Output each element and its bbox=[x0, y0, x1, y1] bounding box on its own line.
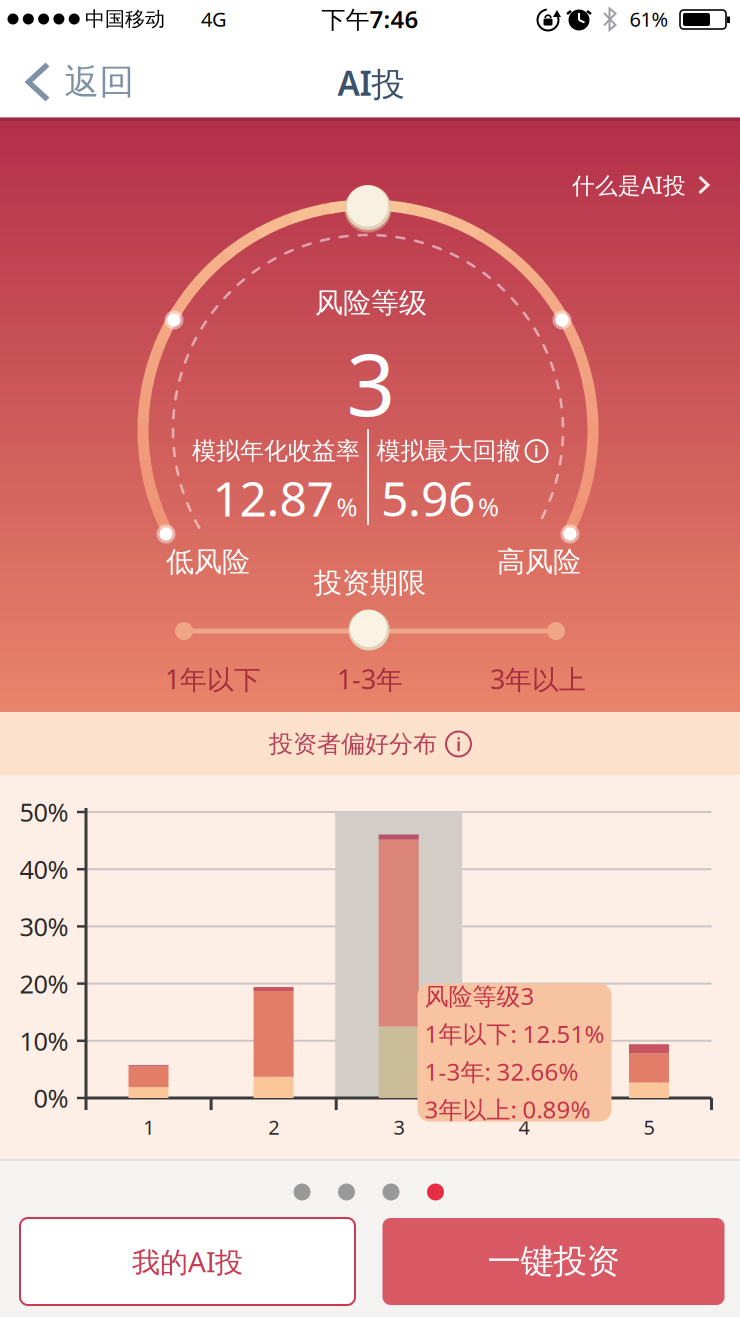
button[interactable]: 第1页 bbox=[293, 1183, 310, 1200]
staticText: 高风险 bbox=[497, 545, 581, 579]
button[interactable]: 我的AI投 bbox=[20, 1218, 355, 1305]
staticText: 什么是AI投 bbox=[572, 170, 686, 200]
staticText: 4G bbox=[201, 6, 227, 32]
staticText: 低风险 bbox=[166, 545, 250, 579]
staticText: 返回 bbox=[64, 61, 134, 103]
staticText: 投资期限 bbox=[314, 566, 426, 600]
staticText: 下午7:46 bbox=[321, 3, 418, 35]
button[interactable]: 什么是AI投 bbox=[572, 170, 710, 200]
staticText: 一键投资 bbox=[487, 1241, 619, 1282]
staticText: 模拟年化收益率 bbox=[192, 436, 360, 466]
staticText: AI投 bbox=[337, 61, 404, 105]
button[interactable]: 第4页 bbox=[427, 1183, 444, 1200]
button[interactable]: 投资者偏好分布信息 bbox=[269, 729, 471, 759]
staticText: 1年以下: 12.51% bbox=[424, 1018, 604, 1049]
staticText: 模拟最大回撤 bbox=[376, 436, 520, 466]
staticText: 1 bbox=[143, 1114, 154, 1140]
staticText: 投资者偏好分布 bbox=[269, 729, 437, 759]
staticText: 3年以上: 0.89% bbox=[424, 1093, 590, 1125]
staticText: 2 bbox=[268, 1114, 279, 1140]
staticText: 中国移动 bbox=[85, 7, 165, 31]
staticText: i bbox=[456, 732, 461, 756]
button[interactable]: 一键投资 bbox=[382, 1218, 724, 1305]
staticText: 5 bbox=[644, 1114, 655, 1140]
staticText: 3年以上 bbox=[490, 661, 586, 697]
staticText: 40% bbox=[19, 852, 68, 886]
button[interactable]: 第2页 bbox=[338, 1183, 355, 1200]
staticText: 10% bbox=[19, 1024, 68, 1058]
staticText: % bbox=[336, 490, 357, 524]
staticText: % bbox=[478, 490, 499, 524]
button[interactable]: 返回 bbox=[10, 51, 150, 113]
staticText: 3 bbox=[393, 1114, 404, 1140]
staticText: 61% bbox=[629, 6, 668, 32]
staticText: 1-3年 bbox=[337, 661, 403, 697]
staticText: i bbox=[534, 440, 539, 462]
button[interactable]: 模拟最大回撤说明 bbox=[525, 440, 547, 462]
staticText: 30% bbox=[19, 910, 68, 943]
staticText: 0% bbox=[33, 1081, 68, 1115]
staticText: 1-3年: 32.66% bbox=[424, 1055, 578, 1087]
staticText: 5.96 bbox=[381, 466, 475, 530]
staticText: 风险等级3 bbox=[424, 980, 534, 1012]
staticText: 12.87 bbox=[212, 466, 333, 530]
staticText: 50% bbox=[19, 795, 68, 829]
staticText: 风险等级 bbox=[315, 286, 427, 320]
staticText: 1年以下 bbox=[165, 661, 261, 697]
staticText: 我的AI投 bbox=[132, 1243, 243, 1280]
staticText: 20% bbox=[19, 967, 68, 1000]
staticText: 4 bbox=[518, 1114, 529, 1140]
staticText: 3 bbox=[346, 326, 395, 440]
button[interactable]: 第3页 bbox=[382, 1183, 399, 1200]
